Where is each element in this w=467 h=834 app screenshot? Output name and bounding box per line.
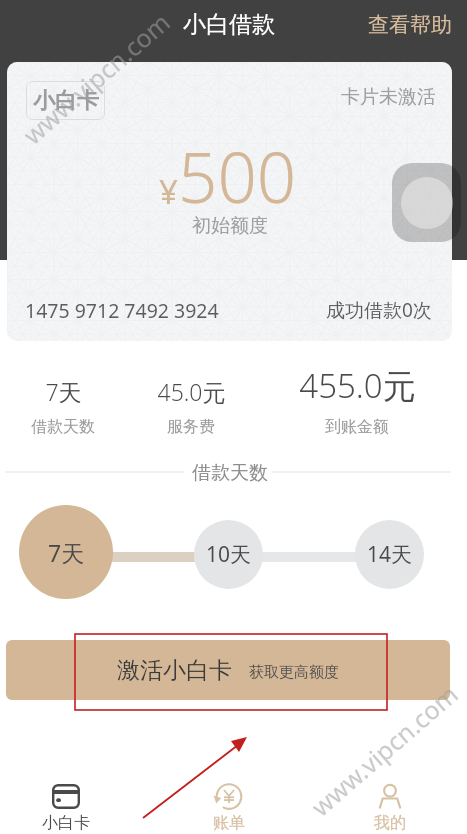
staticText: 初始额度 — [192, 214, 268, 238]
button[interactable]: 我的 — [350, 782, 430, 834]
staticText: 服务费 — [167, 417, 215, 437]
staticText: 10天 — [206, 540, 252, 569]
staticText: ¥ — [159, 169, 178, 214]
staticText: 成功借款0次 — [326, 297, 432, 323]
staticText: 7天 — [48, 537, 85, 568]
button[interactable]: 小白卡 — [26, 782, 106, 834]
button[interactable]: 查看帮助 — [354, 4, 467, 46]
staticText: 我的 — [374, 813, 406, 833]
button[interactable]: 14天 — [355, 520, 424, 589]
staticText: 账单 — [213, 813, 245, 833]
staticText: 卡片未激活 — [341, 85, 436, 109]
other: 账单 — [215, 784, 243, 809]
staticText: 激活小白卡 — [117, 656, 232, 685]
button[interactable]: 7天 — [19, 505, 113, 599]
staticText: 45.0元 — [157, 376, 226, 407]
staticText: 获取更高额度 — [249, 663, 339, 682]
staticText: 500 — [178, 129, 297, 223]
staticText: 14天 — [367, 540, 413, 569]
staticText: 7天 — [45, 376, 82, 407]
button[interactable]: 账单 — [189, 782, 269, 834]
staticText: www.vipcn.com — [15, 5, 177, 151]
staticText: 小白借款 — [183, 10, 275, 39]
other: 小白卡 — [52, 784, 80, 809]
staticText: www.vipcn.com — [303, 677, 465, 823]
staticText: 借款天数 — [31, 417, 95, 437]
staticText: 到账金额 — [325, 417, 389, 437]
staticText: 小白卡 — [33, 87, 99, 115]
staticText: 1475 9712 7492 3924 — [25, 297, 219, 324]
staticText: 455.0元 — [299, 363, 416, 408]
button[interactable]: 10天 — [194, 520, 263, 589]
button[interactable]: 激活小白卡 — [6, 640, 450, 700]
staticText: 借款天数 — [192, 461, 268, 485]
staticText: 小白卡 — [42, 813, 90, 833]
other: 我的 — [376, 784, 404, 809]
staticText: 查看帮助 — [368, 12, 452, 38]
